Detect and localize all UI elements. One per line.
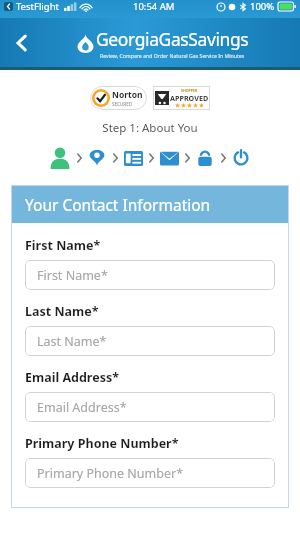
staticText: First Name* [25, 237, 101, 254]
staticText: Last Name* [25, 303, 99, 320]
button[interactable]: SHOPPER [153, 86, 210, 110]
staticText: APPROVED [170, 93, 209, 103]
staticText: Norton [112, 89, 143, 101]
staticText: Step 1: About You [0, 120, 300, 136]
staticText: Review, Compare and Order Natural Gas Se… [100, 52, 245, 59]
button[interactable]: Back [0, 21, 44, 65]
button[interactable]: About you [47, 145, 73, 171]
staticText: GeorgiaGasSavings [96, 27, 249, 51]
staticText: First Name* [37, 267, 108, 284]
button[interactable]: Secure [193, 146, 217, 170]
button[interactable]: Plan details [121, 146, 145, 170]
staticText: 100% [250, 0, 275, 13]
staticText: TestFlight [16, 0, 59, 13]
button[interactable]: Norton [90, 86, 147, 110]
button[interactable]: GeorgiaGasSavings [76, 27, 249, 59]
button[interactable]: Address [85, 146, 109, 170]
button[interactable]: First Name* [25, 260, 275, 290]
staticText: Email Address* [37, 399, 127, 416]
staticText: Primary Phone Number* [37, 465, 184, 482]
staticText: SECURED [112, 101, 133, 107]
staticText: 10:54 AM [133, 0, 175, 13]
staticText: Email Address* [25, 369, 119, 386]
staticText: Primary Phone Number* [25, 435, 179, 452]
staticText: Last Name* [37, 333, 107, 350]
staticText: SHOPPER [181, 88, 198, 93]
button[interactable]: Contact [157, 146, 181, 170]
button[interactable]: Email Address* [25, 392, 275, 422]
button[interactable]: Primary Phone Number* [25, 458, 275, 488]
button[interactable]: Finish [229, 146, 253, 170]
button[interactable]: Last Name* [25, 326, 275, 356]
staticText: Your Contact Information [25, 194, 211, 215]
